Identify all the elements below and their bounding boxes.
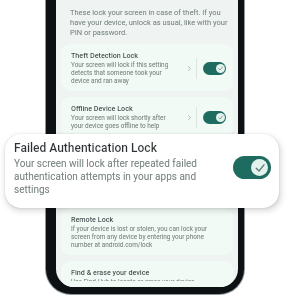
button[interactable]: Toggle setting on (203, 62, 226, 75)
staticText: These lock your screen in case of theft.… (70, 8, 230, 37)
button[interactable]: Toggle setting on (203, 111, 226, 124)
staticText: Your screen will lock if this setting de… (71, 61, 173, 85)
button[interactable]: Failed Authentication Lock (5, 134, 279, 208)
staticText: Find & erase your device (71, 268, 150, 276)
button[interactable]: Theft Detection Lock (61, 44, 233, 91)
staticText: Offline Device Lock (71, 104, 133, 112)
staticText: Use Find Hub to locate or erase your dev… (71, 278, 195, 281)
staticText: Theft Detection Lock (71, 51, 139, 59)
staticText: Remote Lock (71, 215, 114, 223)
button[interactable]: Find & erase your device (61, 261, 233, 287)
button[interactable]: Offline Device Lock (61, 97, 233, 136)
staticText: If your device is lost or stolen, you ca… (71, 225, 226, 249)
staticText: Your screen will lock shortly after your… (71, 114, 173, 130)
button[interactable]: Toggle setting on (233, 156, 271, 179)
staticText: Your screen will lock after repeated fai… (14, 158, 210, 195)
button[interactable]: Remote Lock (61, 208, 233, 255)
staticText: Failed Authentication Lock (14, 141, 157, 155)
